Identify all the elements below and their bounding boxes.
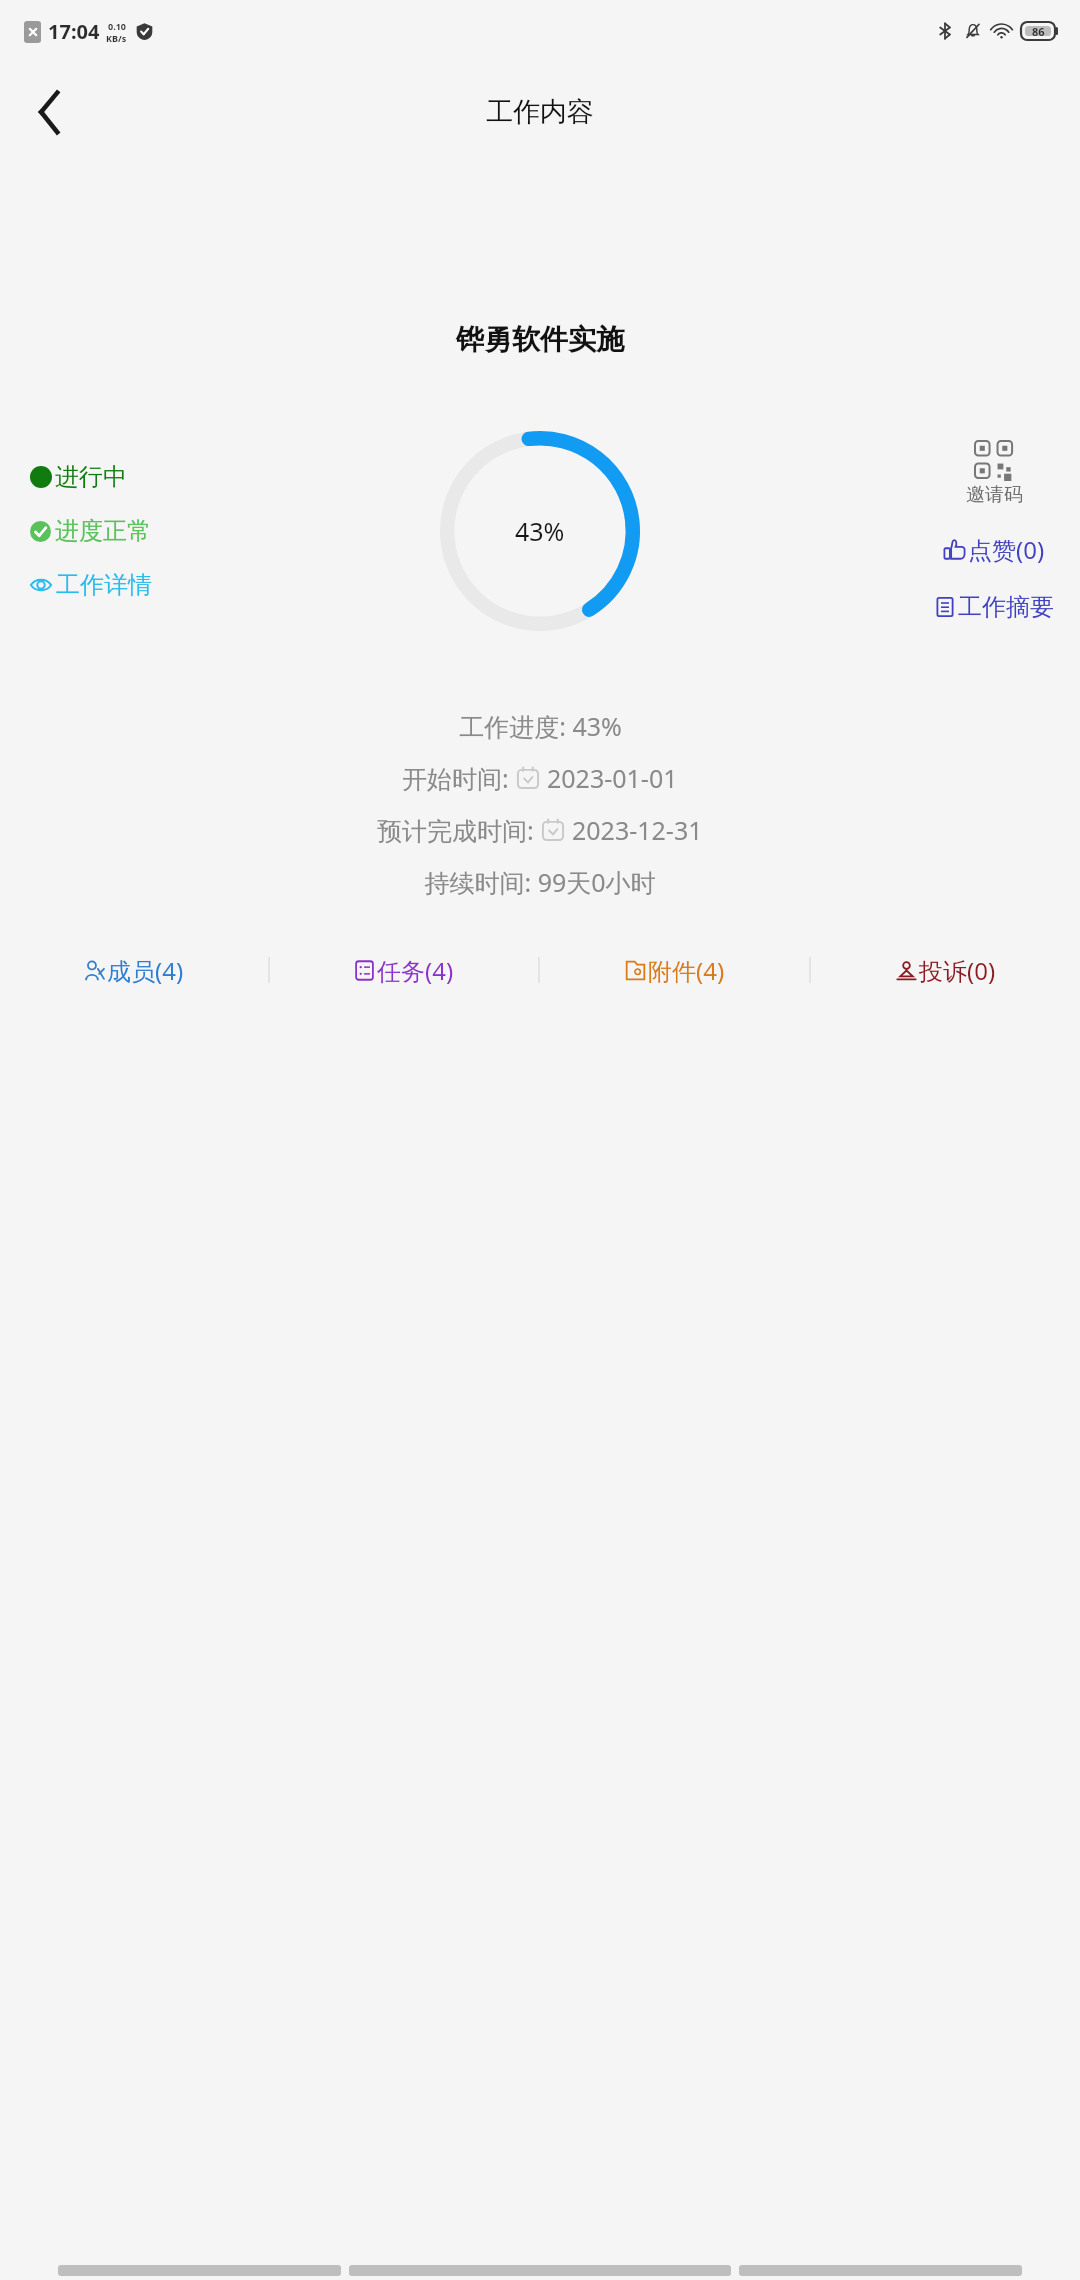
staticText: 2023-12-31 <box>572 813 703 847</box>
staticText: KB/s <box>106 32 127 44</box>
button[interactable]: 工作详情 <box>30 565 152 605</box>
staticText: 进度正常 <box>55 516 151 546</box>
staticText: 点赞(0) <box>968 533 1045 566</box>
staticText: 进行中 <box>55 462 127 492</box>
button[interactable]: 进度正常 <box>30 511 151 551</box>
button[interactable]: 成员(4) <box>0 937 268 1003</box>
staticText: 0.10 <box>108 20 126 32</box>
button[interactable]: 工作摘要 <box>935 588 1054 626</box>
staticText: 2023-01-01 <box>547 761 678 795</box>
button[interactable]: 进行中 <box>30 457 127 497</box>
button[interactable]: 附件(4) <box>540 937 809 1003</box>
staticText: 持续时间: 99天0小时 <box>424 865 656 899</box>
staticText: 工作摘要 <box>958 592 1054 622</box>
staticText: 开始时间: <box>402 761 516 795</box>
staticText: 铧勇软件实施 <box>456 322 624 357</box>
button[interactable]: 点赞(0) <box>944 529 1045 570</box>
staticText: 邀请码 <box>966 483 1023 507</box>
staticText: 工作进度: 43% <box>459 709 622 743</box>
staticText: 投诉(0) <box>919 954 996 987</box>
staticText: 17:04 <box>48 18 100 45</box>
staticText: 工作详情 <box>56 570 152 600</box>
staticText: 43% <box>515 514 565 548</box>
staticText: 86 <box>1032 24 1045 39</box>
button[interactable]: 投诉(0) <box>811 937 1080 1003</box>
button[interactable]: 邀请码 <box>962 437 1027 511</box>
staticText: 成员(4) <box>107 954 184 987</box>
staticText: 预计完成时间: <box>377 813 541 847</box>
staticText: 工作内容 <box>486 95 594 129</box>
staticText: 附件(4) <box>648 954 725 987</box>
button[interactable]: 任务(4) <box>270 937 538 1003</box>
staticText: 任务(4) <box>377 954 454 987</box>
button[interactable]: Back <box>14 76 86 148</box>
